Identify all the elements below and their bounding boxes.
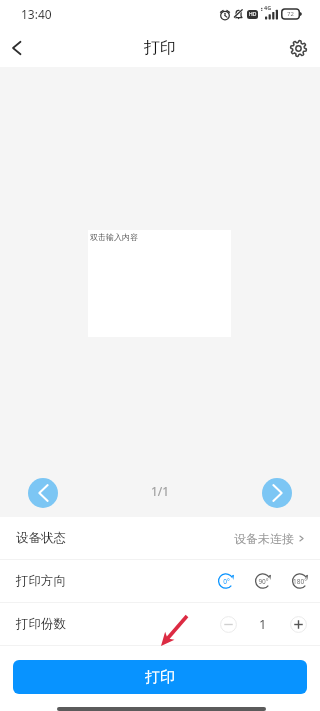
button[interactable]: 打印 bbox=[13, 660, 307, 694]
staticText: 双击输入内容 bbox=[90, 232, 138, 242]
staticText: 90° bbox=[258, 577, 269, 586]
button[interactable]: Settings bbox=[284, 34, 312, 62]
staticText: 72 bbox=[287, 10, 294, 18]
staticText: HD bbox=[249, 11, 257, 18]
button[interactable]: 打印方向 bbox=[0, 560, 320, 602]
button[interactable]: 打印份数 bbox=[0, 603, 320, 645]
staticText: 180° bbox=[293, 577, 307, 586]
staticText: 打印 bbox=[145, 668, 175, 687]
staticText: 1/1 bbox=[0, 483, 320, 499]
button[interactable]: Rotate 0° bbox=[218, 572, 236, 590]
button[interactable]: 双击输入内容 bbox=[88, 230, 231, 337]
button[interactable]: 设备状态 bbox=[0, 517, 320, 559]
staticText: 1 bbox=[259, 615, 267, 633]
staticText: 0° bbox=[223, 577, 230, 586]
staticText: 打印 bbox=[144, 38, 176, 58]
button[interactable]: Next page bbox=[262, 478, 292, 508]
button[interactable]: Previous page bbox=[28, 478, 58, 508]
button[interactable]: Decrease copies bbox=[220, 616, 237, 633]
staticText: 打印份数 bbox=[16, 616, 66, 632]
staticText: 13:40 bbox=[21, 6, 52, 22]
button[interactable]: Rotate 180° bbox=[292, 572, 310, 590]
staticText: 设备未连接 bbox=[234, 531, 294, 546]
staticText: 打印方向 bbox=[16, 573, 66, 589]
button[interactable]: Increase copies bbox=[290, 616, 307, 633]
staticText: 设备状态 bbox=[16, 530, 66, 546]
staticText: 4G bbox=[264, 4, 272, 11]
button[interactable]: Back bbox=[3, 34, 31, 62]
button[interactable]: Rotate 90° bbox=[255, 572, 273, 590]
